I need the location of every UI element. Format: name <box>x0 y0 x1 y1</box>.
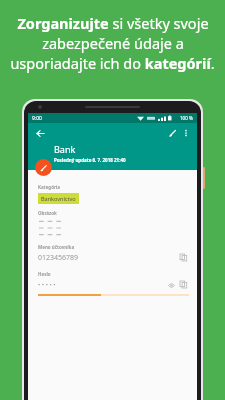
button[interactable]: Copy <box>178 252 189 263</box>
staticText: Posledný update 6. 7. 2018 21:40 <box>54 157 126 163</box>
staticText: Zorganizujte si všetky svoje <box>17 13 209 33</box>
staticText: 100 % <box>180 115 193 121</box>
staticText: • • • • • <box>38 281 56 289</box>
button[interactable]: Edit <box>166 126 180 140</box>
staticText: Bank <box>54 143 76 155</box>
staticText: Heslo <box>38 271 51 277</box>
button[interactable]: Back <box>33 126 47 140</box>
button[interactable]: Edit entry <box>35 159 52 176</box>
staticText: 9:00 <box>32 115 42 122</box>
staticText: zabezpečené údaje a <box>42 33 184 53</box>
button[interactable]: More options <box>180 127 192 139</box>
staticText: Bankovníctvo <box>41 195 76 202</box>
button[interactable]: Show password <box>166 280 176 290</box>
staticText: usporiadajte ich do kategórií. <box>10 53 215 73</box>
staticText: Kategória <box>38 184 61 190</box>
staticText: 0123456789 <box>38 253 79 263</box>
button[interactable]: Copy <box>178 279 189 290</box>
button[interactable]: Bankovníctvo <box>41 195 76 202</box>
staticText: Obrázok <box>38 210 57 216</box>
staticText: Meno účtovníka <box>38 244 75 250</box>
